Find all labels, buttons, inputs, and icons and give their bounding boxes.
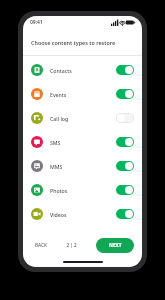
staticText: BACK (35, 242, 47, 248)
button[interactable]: Toggle on (116, 65, 134, 75)
staticText: NEXT (109, 242, 122, 249)
button[interactable]: Toggle on (116, 161, 134, 171)
button[interactable]: Toggle on (116, 89, 134, 99)
staticText: SMS (50, 139, 61, 146)
button[interactable]: MMS (23, 154, 142, 178)
button[interactable]: NEXT (96, 238, 134, 253)
staticText: Contacts (50, 67, 72, 74)
button[interactable]: Photos (23, 178, 142, 202)
button[interactable]: SMS (23, 130, 142, 154)
button[interactable]: Toggle on (116, 209, 134, 219)
staticText: Videos (50, 211, 67, 218)
staticText: MMS (50, 163, 63, 170)
button[interactable]: Videos (23, 202, 142, 226)
button[interactable]: Contacts (23, 58, 142, 82)
button[interactable]: Call log (23, 106, 142, 130)
button[interactable]: Toggle on (116, 137, 134, 147)
staticText: Choose content types to restore (31, 39, 116, 46)
button[interactable]: Toggle on (116, 185, 134, 195)
button[interactable]: Toggle off (116, 113, 134, 123)
staticText: 2 | 2 (66, 242, 77, 248)
staticText: 09:41 (30, 19, 43, 26)
button[interactable]: BACK (32, 239, 50, 251)
staticText: Events (50, 91, 67, 98)
staticText: Call log (50, 115, 69, 122)
button[interactable]: Events (23, 82, 142, 106)
staticText: Photos (50, 187, 68, 194)
